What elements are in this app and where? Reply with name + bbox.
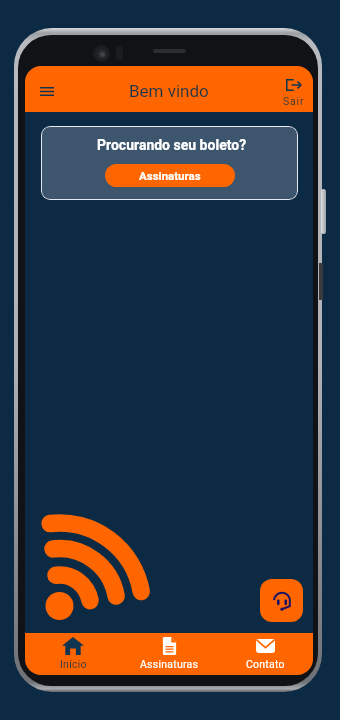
button[interactable]: Atendimento: [260, 579, 303, 622]
staticText: Assinaturas: [139, 169, 201, 182]
button[interactable]: Sair: [280, 78, 308, 108]
staticText: Início: [60, 658, 87, 670]
staticText: Procurando seu boleto?: [97, 137, 247, 153]
button[interactable]: Início: [25, 633, 121, 675]
staticText: Assinaturas: [140, 658, 199, 670]
staticText: Bem vindo: [129, 81, 209, 101]
button[interactable]: Assinaturas: [105, 164, 235, 187]
staticText: Sair: [283, 95, 305, 107]
button[interactable]: Assinaturas: [121, 633, 217, 675]
button[interactable]: Contato: [217, 633, 313, 675]
button[interactable]: Menu: [32, 76, 62, 106]
staticText: Contato: [246, 658, 285, 670]
